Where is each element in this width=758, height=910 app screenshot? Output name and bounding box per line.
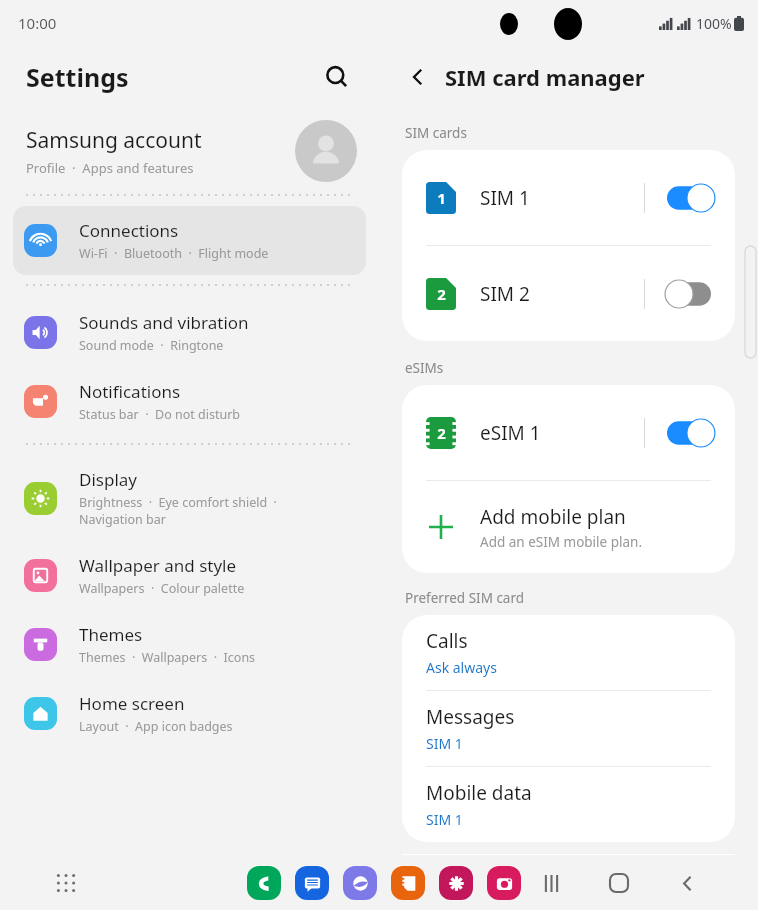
button[interactable]: Phone bbox=[247, 866, 281, 900]
button[interactable]: Connections bbox=[13, 206, 366, 275]
staticText: Status bar · Do not disturb bbox=[79, 406, 241, 423]
button[interactable]: Back bbox=[668, 864, 706, 902]
button[interactable]: 2 bbox=[402, 246, 735, 341]
button[interactable]: Gallery bbox=[439, 866, 473, 900]
staticText: SIM 1 bbox=[426, 810, 463, 829]
button[interactable]: Mobile data bbox=[402, 767, 735, 842]
staticText: Samsung account bbox=[26, 126, 202, 155]
staticText: Themes · Wallpapers · Icons bbox=[79, 649, 256, 666]
button[interactable]: Home screen bbox=[13, 679, 366, 748]
button[interactable]: Apps bbox=[48, 865, 84, 901]
button[interactable]: Themes bbox=[13, 610, 366, 679]
button[interactable]: Camera bbox=[487, 866, 521, 900]
button[interactable]: Back bbox=[399, 58, 437, 96]
staticText: Preferred SIM card bbox=[405, 589, 525, 607]
staticText: 2 bbox=[437, 284, 446, 304]
button[interactable]: Samsung account bbox=[0, 108, 379, 194]
staticText: SIM cards bbox=[405, 124, 467, 142]
button[interactable]: Home bbox=[600, 864, 638, 902]
button[interactable]: Display bbox=[13, 455, 366, 541]
staticText: Sounds and vibration bbox=[79, 311, 249, 334]
staticText: Connections bbox=[79, 219, 179, 242]
staticText: Messages bbox=[426, 704, 515, 730]
staticText: eSIM 1 bbox=[480, 420, 644, 446]
button[interactable]: Notes bbox=[391, 866, 425, 900]
button[interactable]: Messages bbox=[295, 866, 329, 900]
button[interactable]: Turn off bbox=[667, 418, 717, 448]
staticText: 1 bbox=[437, 188, 446, 208]
staticText: Mobile data bbox=[426, 780, 532, 806]
staticText: SIM card manager bbox=[445, 62, 645, 92]
staticText: Display bbox=[79, 468, 137, 491]
button[interactable]: Add mobile plan bbox=[402, 481, 735, 573]
button[interactable]: Turn off bbox=[667, 183, 717, 213]
button[interactable]: Internet bbox=[343, 866, 377, 900]
staticText: Wi-Fi · Bluetooth · Flight mode bbox=[79, 245, 269, 262]
button[interactable]: Messages bbox=[402, 691, 735, 766]
staticText: Notifications bbox=[79, 380, 181, 403]
staticText: Layout · App icon badges bbox=[79, 718, 233, 735]
staticText: Wallpapers · Colour palette bbox=[79, 580, 245, 597]
staticText: Profile · Apps and features bbox=[26, 159, 194, 177]
staticText: Sound mode · Ringtone bbox=[79, 337, 224, 354]
staticText: Home screen bbox=[79, 692, 185, 715]
button[interactable]: Search bbox=[317, 57, 357, 97]
staticText: eSIMs bbox=[405, 359, 444, 377]
button[interactable]: Sounds and vibration bbox=[13, 298, 366, 367]
staticText: 10:00 bbox=[18, 13, 57, 33]
staticText: Wallpaper and style bbox=[79, 554, 237, 577]
button[interactable]: Calls bbox=[402, 615, 735, 690]
staticText: Add an eSIM mobile plan. bbox=[480, 533, 643, 551]
button[interactable]: Turn on bbox=[667, 279, 717, 309]
staticText: Calls bbox=[426, 628, 468, 654]
staticText: Settings bbox=[26, 60, 129, 94]
button[interactable]: Recents bbox=[532, 864, 570, 902]
staticText: Themes bbox=[79, 623, 143, 646]
staticText: Add mobile plan bbox=[480, 504, 626, 530]
staticText: 2 bbox=[437, 423, 446, 443]
button[interactable]: Notifications bbox=[13, 367, 366, 436]
staticText: SIM 1 bbox=[426, 734, 463, 753]
staticText: Brightness · Eye comfort shield · Naviga… bbox=[79, 494, 277, 528]
staticText: SIM 2 bbox=[480, 281, 644, 307]
button[interactable]: 1 bbox=[402, 150, 735, 245]
staticText: SIM 1 bbox=[480, 185, 644, 211]
button[interactable]: Wallpaper and style bbox=[13, 541, 366, 610]
staticText: Ask always bbox=[426, 658, 497, 677]
staticText: 100% bbox=[696, 14, 732, 33]
button[interactable]: 2 bbox=[402, 385, 735, 480]
